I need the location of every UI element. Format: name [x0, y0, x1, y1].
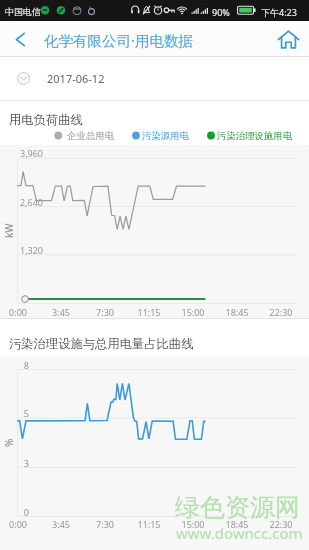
staticText: 下午4:23 — [261, 6, 297, 18]
staticText: 0:00 — [0, 306, 36, 318]
staticText: 中国电信 — [5, 6, 41, 17]
button[interactable]: Home — [267, 21, 309, 58]
staticText: 污染源用电 — [142, 130, 189, 142]
staticText: 化学有限公司·用电数据 — [44, 30, 193, 50]
staticText: % — [2, 438, 16, 447]
staticText: 15:00 — [175, 306, 211, 318]
staticText: 11:15 — [131, 518, 167, 530]
staticText: 3 — [0, 457, 29, 469]
staticText: 15:00 — [175, 518, 211, 530]
staticText: 企业总用电 — [67, 130, 114, 142]
staticText: 绿色资源网 — [175, 492, 300, 523]
staticText: 污染治理设施用电 — [217, 130, 293, 142]
staticText: 2017-06-12 — [47, 71, 105, 86]
staticText: 3:45 — [43, 518, 79, 530]
staticText: 22:30 — [263, 306, 299, 318]
staticText: 7:30 — [87, 518, 123, 530]
staticText: 用电负荷曲线 — [9, 112, 83, 127]
staticText: 5 — [0, 407, 29, 419]
staticText: 18:45 — [219, 518, 255, 530]
staticText: 0 — [0, 506, 29, 518]
staticText: 3:45 — [43, 306, 79, 318]
staticText: 0:00 — [0, 518, 36, 530]
staticText: 22:30 — [263, 518, 299, 530]
staticText: 8 — [0, 359, 29, 371]
staticText: 90% — [212, 6, 230, 18]
button[interactable]: 2017-06-12 — [0, 57, 309, 100]
staticText: kW — [2, 223, 16, 238]
staticText: 3,960 — [3, 147, 43, 159]
staticText: 1,320 — [3, 244, 43, 256]
staticText: 7:30 — [87, 306, 123, 318]
staticText: www.downcc.com — [176, 523, 303, 543]
staticText: 11:15 — [131, 306, 167, 318]
button[interactable]: Back — [0, 21, 40, 58]
staticText: 2,640 — [3, 196, 43, 208]
staticText: 污染治理设施与总用电量占比曲线 — [9, 336, 194, 351]
staticText: 18:45 — [219, 306, 255, 318]
